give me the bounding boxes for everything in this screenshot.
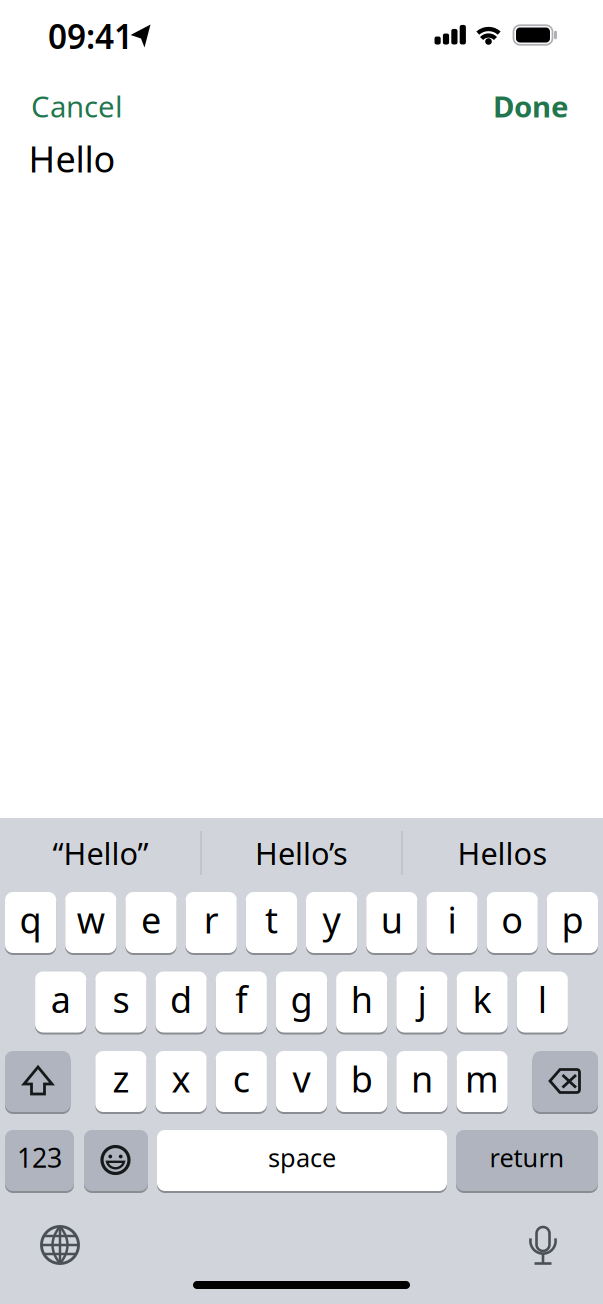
button[interactable]: Hello’s — [201, 825, 401, 881]
button[interactable]: “Hello” — [0, 825, 200, 881]
button[interactable]: return — [456, 1130, 598, 1191]
staticText: n — [411, 1055, 433, 1102]
button[interactable]: a — [35, 971, 86, 1032]
staticText: s — [112, 975, 129, 1023]
staticText: p — [561, 896, 583, 943]
staticText: e — [141, 896, 161, 943]
button[interactable]: space — [157, 1130, 447, 1191]
button[interactable] — [0, 0, 603, 1304]
staticText: w — [77, 896, 105, 943]
button[interactable]: n — [396, 1051, 447, 1112]
button[interactable]: c — [216, 1051, 267, 1112]
button[interactable]: x — [155, 1051, 207, 1112]
staticText: k — [473, 975, 492, 1023]
staticText: c — [233, 1055, 250, 1102]
button[interactable]: q — [5, 892, 56, 953]
button[interactable]: t — [246, 892, 297, 953]
staticText: a — [51, 975, 71, 1023]
staticText: l — [538, 975, 547, 1023]
staticText: h — [351, 975, 373, 1023]
button[interactable]: j — [396, 971, 447, 1032]
button[interactable]: u — [366, 892, 417, 953]
button[interactable]: w — [65, 892, 116, 953]
button[interactable]: h — [336, 971, 387, 1032]
button[interactable] — [0, 0, 603, 1304]
button[interactable]: Hellos — [402, 825, 602, 881]
staticText: g — [290, 975, 312, 1023]
staticText: f — [235, 975, 247, 1023]
button[interactable]: d — [155, 971, 207, 1032]
button[interactable]: m — [456, 1051, 508, 1112]
staticText: Hello’s — [255, 833, 348, 873]
staticText: t — [265, 896, 278, 943]
staticText: 09:41 — [48, 14, 133, 58]
button[interactable]: k — [456, 971, 508, 1032]
staticText: i — [447, 896, 456, 943]
staticText: Hello — [28, 135, 115, 182]
staticText: m — [465, 1055, 499, 1102]
staticText: o — [501, 896, 523, 943]
button[interactable]: s — [95, 971, 146, 1032]
staticText: u — [381, 896, 403, 943]
staticText: Cancel — [31, 86, 123, 125]
staticText: 123 — [17, 1140, 62, 1175]
button[interactable]: g — [276, 971, 327, 1032]
button[interactable]: f — [216, 971, 267, 1032]
staticText: Done — [493, 86, 569, 125]
staticText: “Hello” — [52, 833, 148, 873]
staticText: b — [351, 1055, 373, 1102]
button[interactable]: b — [336, 1051, 387, 1112]
button[interactable]: e — [125, 892, 177, 953]
button[interactable]: r — [186, 892, 237, 953]
button[interactable] — [513, 1213, 573, 1273]
button[interactable] — [30, 1215, 90, 1275]
button[interactable]: Cancel — [31, 86, 123, 125]
button[interactable]: l — [517, 971, 568, 1032]
button[interactable]: Done — [493, 86, 569, 125]
button[interactable]: o — [487, 892, 538, 953]
staticText: space — [268, 1141, 336, 1174]
staticText: q — [20, 896, 42, 943]
button[interactable]: v — [276, 1051, 327, 1112]
staticText: x — [172, 1055, 191, 1102]
staticText: return — [489, 1141, 564, 1174]
staticText: j — [417, 975, 426, 1023]
button[interactable]: i — [426, 892, 478, 953]
staticText: d — [170, 975, 192, 1023]
button[interactable]: y — [306, 892, 357, 953]
staticText: r — [204, 896, 219, 943]
button[interactable]: z — [95, 1051, 146, 1112]
staticText: z — [112, 1055, 129, 1102]
button[interactable]: p — [547, 892, 598, 953]
button[interactable] — [0, 0, 603, 1304]
staticText: Hellos — [457, 833, 547, 873]
staticText: y — [323, 896, 341, 943]
button[interactable]: 123 — [5, 1130, 74, 1191]
staticText: v — [292, 1055, 310, 1102]
